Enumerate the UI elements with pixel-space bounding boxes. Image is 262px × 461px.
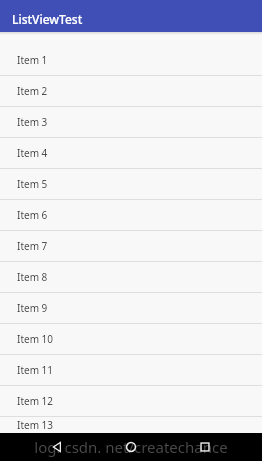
button[interactable]: Item 5	[0, 169, 262, 199]
staticText: Item 7	[17, 239, 48, 253]
staticText: Item 9	[17, 301, 48, 315]
button[interactable]: Recent apps	[192, 434, 218, 460]
staticText: Item 1	[17, 53, 48, 67]
staticText: ListViewTest	[12, 11, 83, 27]
staticText: Item 11	[17, 363, 54, 377]
button[interactable]: Item 3	[0, 107, 262, 137]
staticText: Item 4	[17, 146, 48, 160]
button[interactable]: Item 9	[0, 293, 262, 323]
button[interactable]: Item 12	[0, 386, 262, 416]
staticText: Item 3	[17, 115, 48, 129]
staticText: Item 10	[17, 332, 54, 346]
staticText: Item 2	[17, 84, 48, 98]
staticText: log. csdn. net/createchance	[0, 437, 262, 457]
staticText: Item 5	[17, 177, 48, 191]
button[interactable]: Item 11	[0, 355, 262, 385]
staticText: Item 6	[17, 208, 48, 222]
button[interactable]: Item 7	[0, 231, 262, 261]
button[interactable]: Item 6	[0, 200, 262, 230]
button[interactable]: Item 10	[0, 324, 262, 354]
button[interactable]: Home	[118, 434, 144, 460]
staticText: Item 13	[17, 418, 54, 432]
button[interactable]: Item 4	[0, 138, 262, 168]
staticText: Item 12	[17, 394, 54, 408]
button[interactable]: Item 2	[0, 76, 262, 106]
button[interactable]: Item 1	[0, 45, 262, 75]
button[interactable]: Item 8	[0, 262, 262, 292]
button[interactable]: Item 13	[0, 417, 262, 433]
button[interactable]: Back	[44, 434, 70, 460]
staticText: Item 8	[17, 270, 48, 284]
